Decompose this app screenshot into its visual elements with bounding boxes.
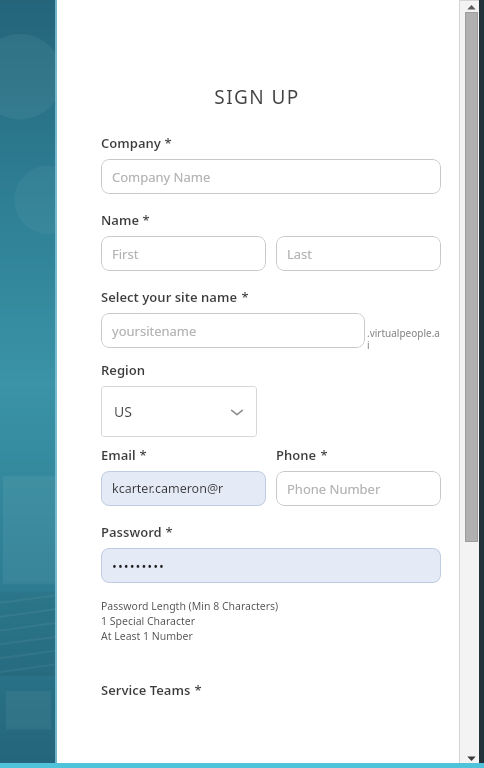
staticText: Password Length (Min 8 Characters) 1 Spe… [101,599,279,643]
staticText: * [139,211,150,229]
button[interactable]: ••••••••• [101,548,441,583]
staticText: Select your site name [101,288,238,306]
staticText: yoursitename [112,322,197,340]
staticText: ••••••••• [112,557,165,575]
button[interactable]: yoursitename [101,313,365,348]
staticText: Service Teams [101,681,191,699]
staticText: kcarter.cameron@r [112,480,224,497]
button[interactable]: Company Name [101,159,441,194]
staticText: * [162,523,173,541]
staticText: Email [101,446,136,464]
staticText: * [238,288,249,306]
staticText: * [161,134,172,152]
staticText: Phone [276,446,317,464]
staticText: Name [101,211,139,229]
staticText: Company Name [112,168,211,186]
other: Scroll down [466,753,477,764]
staticText: * [191,681,202,699]
staticText: SIGN UP [59,84,455,110]
button[interactable]: First [101,236,266,271]
staticText: US [114,402,132,421]
button[interactable] [465,12,478,542]
other: Open region list [230,405,244,419]
staticText: .virtualpeople.ai [367,326,441,352]
staticText: Region [101,361,146,379]
button[interactable]: Last [276,236,441,271]
button[interactable]: kcarter.cameron@r [101,471,266,506]
other: Scroll up [466,2,477,13]
button[interactable]: Phone Number [276,471,441,506]
staticText: * [136,446,147,464]
staticText: Last [287,245,313,263]
staticText: First [112,245,139,263]
staticText: * [317,446,328,464]
button[interactable]: US [101,386,257,437]
staticText: Company [101,134,161,152]
staticText: Password [101,523,162,541]
staticText: Phone Number [287,480,381,498]
